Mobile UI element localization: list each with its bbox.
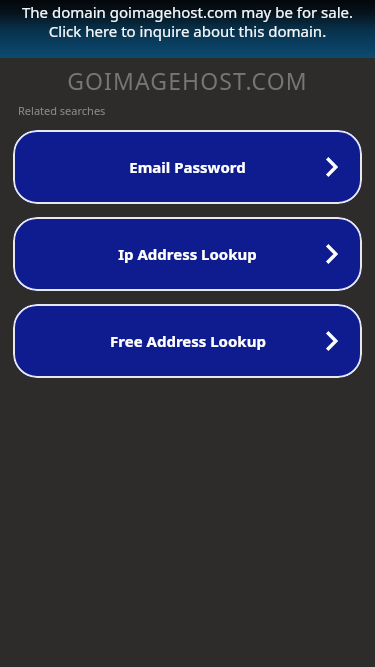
staticText: Related searches [18,103,106,118]
button[interactable]: Free Address Lookup [13,304,362,378]
other: Open Email Password [326,158,338,176]
other: Open Free Address Lookup [326,332,338,350]
staticText: The domain goimagehost.com may be for sa… [12,2,363,41]
staticText: Free Address Lookup [110,331,266,351]
button[interactable]: Ip Address Lookup [13,217,362,291]
button[interactable]: The domain goimagehost.com may be for sa… [0,0,375,58]
staticText: GOIMAGEHOST.COM [67,65,308,96]
staticText: Ip Address Lookup [118,244,257,264]
staticText: Email Password [129,157,246,177]
button[interactable]: Email Password [13,130,362,204]
other: Open Ip Address Lookup [326,245,338,263]
